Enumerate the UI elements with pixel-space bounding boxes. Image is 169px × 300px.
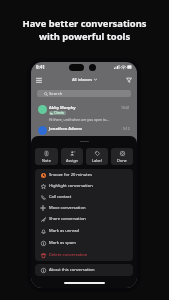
- staticText: All inboxes: [72, 77, 93, 82]
- button[interactable]: Call contact: [35, 191, 133, 202]
- staticText: Call contact: [49, 194, 72, 200]
- staticText: Search: [49, 91, 63, 97]
- button[interactable]: Snooze for 20 minutes: [35, 169, 133, 180]
- button[interactable]: Menu: [36, 77, 42, 83]
- staticText: About this conversation: [49, 267, 95, 273]
- button[interactable]: Search: [37, 90, 131, 97]
- button[interactable]: Move conversation: [35, 202, 133, 213]
- button[interactable]: Jonathon Adams: [31, 124, 137, 144]
- button[interactable]: Done: [111, 148, 133, 165]
- button[interactable]: Filter: [126, 77, 132, 83]
- staticText: Snooze for 20 minutes: [49, 172, 93, 178]
- staticText: Label: [92, 158, 102, 163]
- staticText: 9:41: [36, 64, 45, 70]
- staticText: Abby Murphy: [49, 105, 76, 110]
- button[interactable]: Abby Murphy: [31, 102, 137, 125]
- staticText: Jonathon Adams: [49, 126, 82, 131]
- button[interactable]: Delete conversation: [35, 249, 133, 261]
- staticText: Assign: [66, 158, 79, 163]
- staticText: Move conversation: [49, 205, 86, 211]
- button[interactable]: Assign: [61, 148, 83, 165]
- button[interactable]: Share conversation: [35, 213, 133, 225]
- button[interactable]: Mark as unread: [35, 225, 133, 237]
- staticText: 9:12: [123, 126, 130, 131]
- staticText: Done: [117, 158, 127, 163]
- staticText: Mark as unread: [49, 228, 80, 234]
- staticText: Have better conversations with powerful …: [6, 17, 163, 43]
- staticText: Note: [42, 158, 51, 163]
- staticText: Share conversation: [49, 216, 86, 222]
- button[interactable]: About this conversation: [35, 264, 133, 276]
- button[interactable]: Highlight conversation: [35, 180, 133, 191]
- button[interactable]: Mark as spam: [35, 237, 133, 249]
- staticText: Clients: [54, 111, 65, 115]
- button[interactable]: Label: [86, 148, 108, 165]
- staticText: Hi there, until when are you open to...: [49, 117, 110, 122]
- staticText: Delete conversation: [49, 252, 88, 258]
- button[interactable]: All inboxes: [72, 77, 97, 82]
- button[interactable]: Note: [35, 148, 58, 165]
- staticText: 10:41: [121, 105, 130, 110]
- staticText: Mark as spam: [49, 240, 76, 246]
- staticText: Highlight conversation: [49, 183, 93, 189]
